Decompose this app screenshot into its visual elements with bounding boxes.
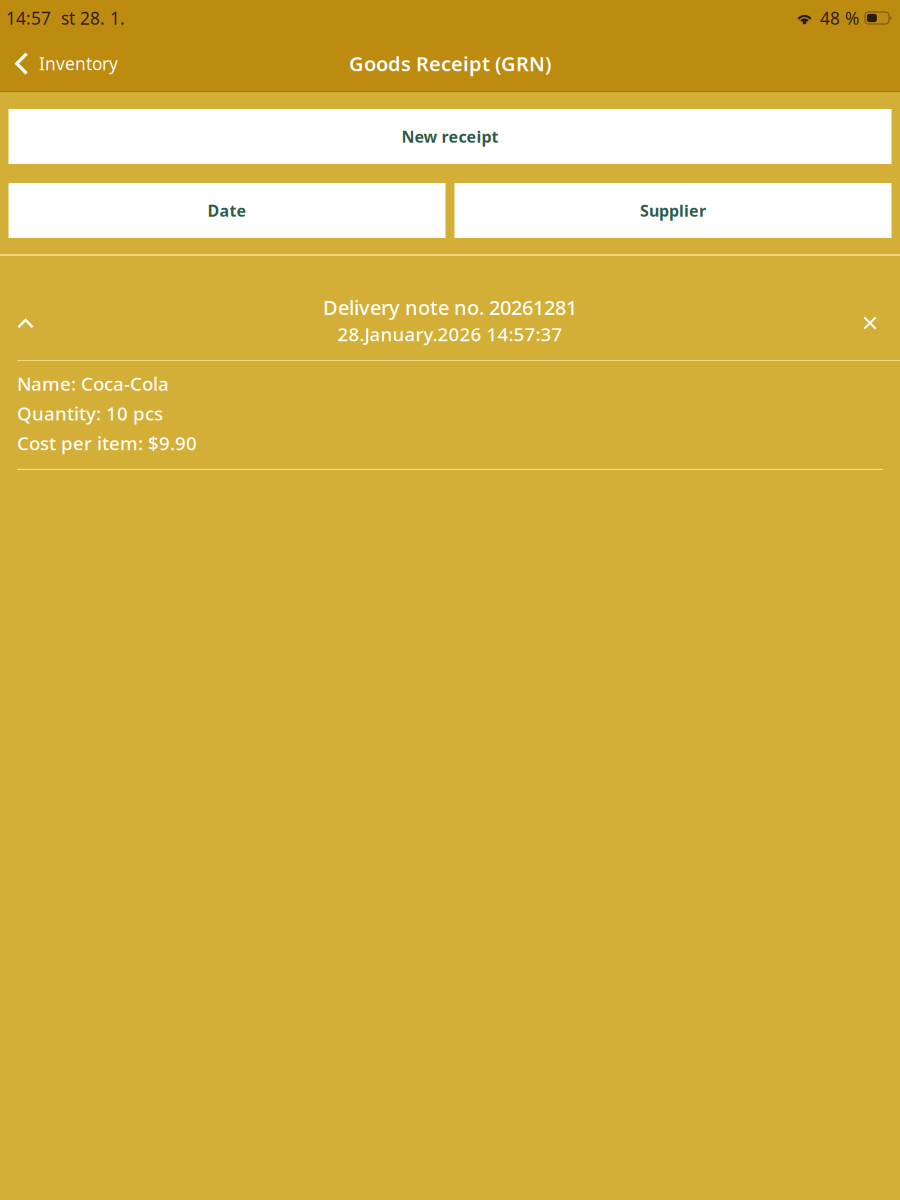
staticText: 28.January.2026 14:57:37 (337, 322, 562, 346)
staticText: Goods Receipt (GRN) (349, 50, 551, 77)
staticText: New receipt (401, 126, 498, 147)
staticText: 14:57 (6, 6, 51, 29)
button[interactable]: Date (8, 183, 445, 238)
staticText: Cost per item: $9.90 (17, 431, 197, 455)
staticText: Name: Coca-Cola (17, 371, 169, 396)
staticText: Delivery note no. 20261281 (323, 294, 577, 321)
staticText: 48 % (820, 6, 859, 29)
button[interactable]: Close (844, 255, 900, 361)
button[interactable]: New receipt (8, 109, 891, 164)
button[interactable]: Inventory (0, 36, 132, 90)
staticText: Inventory (39, 52, 118, 75)
staticText: st 28. 1. (61, 6, 125, 29)
button[interactable]: Supplier (454, 183, 891, 238)
staticText: Supplier (640, 200, 706, 221)
staticText: Quantity: 10 pcs (17, 401, 163, 426)
button[interactable]: Collapse (0, 256, 53, 360)
staticText: Date (207, 200, 246, 221)
